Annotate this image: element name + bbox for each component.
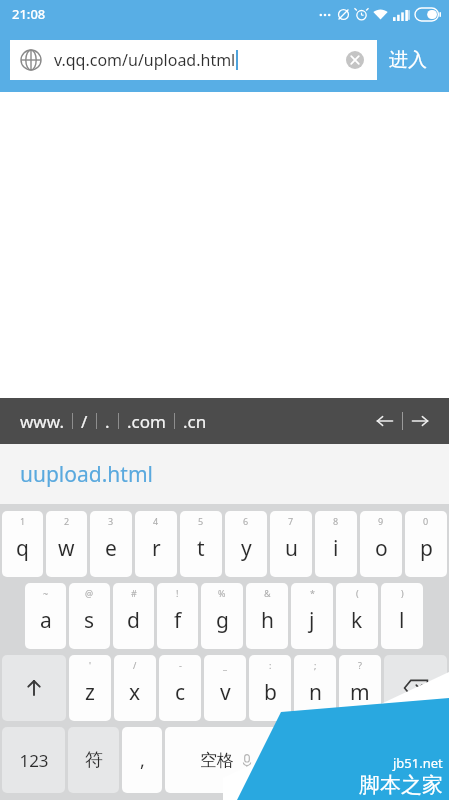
button[interactable]: ( [336, 583, 378, 649]
staticText: h [261, 606, 274, 635]
staticText: 123 [19, 749, 49, 772]
button[interactable]: 0 [405, 511, 447, 577]
button[interactable]: .com [119, 404, 174, 439]
other: Site [20, 49, 42, 71]
staticText: / [133, 659, 137, 671]
button[interactable]: ! [157, 583, 198, 649]
staticText: v [220, 678, 231, 707]
button[interactable]: ' [69, 655, 111, 721]
staticText: www. [20, 410, 64, 433]
staticText: & [264, 587, 271, 599]
staticText: t [197, 534, 205, 563]
button[interactable] [385, 727, 447, 793]
staticText: . [105, 410, 110, 433]
staticText: ) [401, 587, 404, 599]
button[interactable]: www. [12, 404, 72, 439]
button[interactable]: 空格 [165, 727, 286, 793]
staticText: , [140, 748, 145, 773]
button[interactable]: 4 [135, 511, 177, 577]
staticText: * [310, 587, 315, 599]
button[interactable]: Backspace [384, 655, 447, 721]
staticText: ' [89, 659, 92, 671]
button[interactable]: @ [69, 583, 110, 649]
staticText: 21:08 [12, 5, 46, 23]
button[interactable]: 1 [2, 511, 43, 577]
button[interactable]: * [291, 583, 333, 649]
staticText: k [351, 606, 363, 635]
staticText: ( [356, 587, 359, 599]
staticText: u [285, 534, 298, 563]
button[interactable]: Site [10, 40, 377, 80]
staticText: / [81, 410, 88, 433]
staticText: 5 [198, 515, 204, 527]
button[interactable]: 5 [180, 511, 222, 577]
button[interactable]: 符 [68, 727, 119, 793]
staticText: 脚本之家 [359, 772, 443, 798]
staticText: uupload.html [20, 460, 153, 489]
button[interactable]: 3 [90, 511, 132, 577]
staticText: w [58, 534, 75, 563]
staticText: i [333, 534, 339, 563]
staticText: g [216, 606, 229, 635]
button[interactable]: Shift [2, 655, 66, 721]
button[interactable]: / [73, 404, 96, 439]
staticText: 6 [243, 515, 249, 527]
button[interactable]: .cn [175, 404, 215, 439]
button[interactable]: 2 [46, 511, 87, 577]
staticText: 空格 [200, 750, 234, 771]
button[interactable]: Clear text [343, 48, 367, 72]
button[interactable]: 符 [332, 727, 382, 793]
staticText: a [40, 606, 52, 635]
staticText: z [85, 678, 95, 707]
button[interactable]: . [97, 404, 118, 439]
button[interactable]: 8 [315, 511, 357, 577]
staticText: 进入 [389, 48, 427, 72]
button[interactable]: Next [403, 404, 437, 438]
button[interactable]: _ [204, 655, 246, 721]
staticText: % [218, 587, 226, 599]
staticText: 3 [108, 515, 114, 527]
staticText: n [309, 678, 322, 707]
staticText: p [420, 534, 433, 563]
staticText: # [131, 587, 137, 599]
staticText: 7 [288, 515, 294, 527]
button[interactable]: 进入 [377, 28, 439, 92]
button[interactable]: # [113, 583, 154, 649]
button[interactable]: : [249, 655, 291, 721]
button[interactable]: / [114, 655, 156, 721]
staticText: .cn [183, 410, 207, 433]
button[interactable]: , [122, 727, 162, 793]
button[interactable]: 6 [225, 511, 267, 577]
staticText: .com [127, 410, 166, 433]
button[interactable]: 7 [270, 511, 312, 577]
button[interactable]: 9 [360, 511, 402, 577]
staticText: 0 [423, 515, 429, 527]
staticText: jb51.net [393, 754, 443, 772]
button[interactable]: 123 [2, 727, 65, 793]
button[interactable]: ) [381, 583, 423, 649]
staticText: c [175, 678, 186, 707]
staticText: ! [176, 587, 179, 599]
staticText: 2 [64, 515, 70, 527]
button[interactable]: ~ [25, 583, 66, 649]
button[interactable]: - [159, 655, 201, 721]
staticText: 1 [20, 515, 26, 527]
button[interactable]: & [246, 583, 288, 649]
staticText: 符 [85, 749, 103, 772]
button[interactable]: Previous [368, 404, 402, 438]
staticText: f [174, 606, 182, 635]
staticText: m [350, 678, 370, 707]
button[interactable]: uupload.html [0, 444, 449, 504]
button[interactable]: ; [294, 655, 336, 721]
staticText: 8 [333, 515, 339, 527]
button[interactable]: ? [339, 655, 381, 721]
staticText: : [269, 659, 272, 671]
staticText: ; [314, 659, 317, 671]
staticText: l [399, 606, 405, 635]
staticText: q [16, 534, 29, 563]
staticText: 4 [153, 515, 159, 527]
button[interactable]: % [201, 583, 243, 649]
